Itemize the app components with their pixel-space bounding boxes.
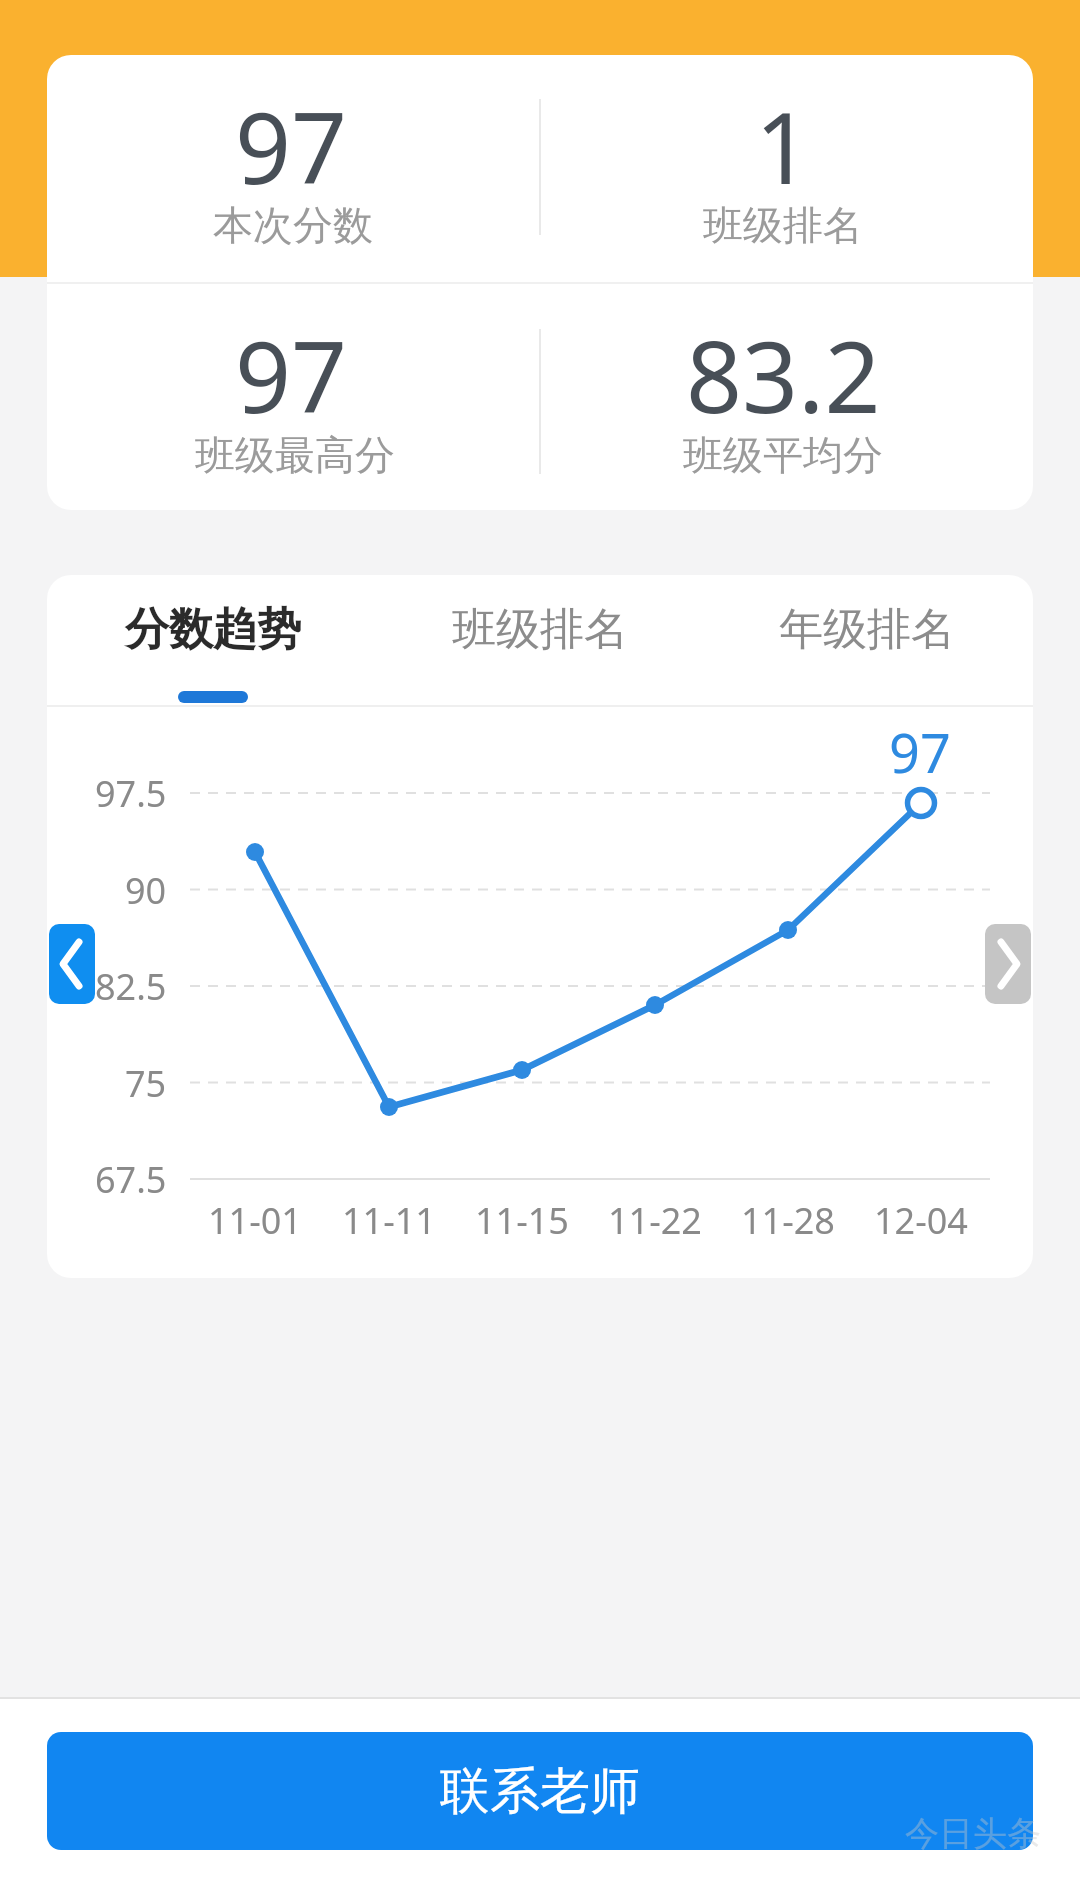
staticText: 11-28 [741, 1196, 835, 1245]
staticText: 82.5 [95, 962, 167, 1011]
button[interactable]: 年级排名 [717, 594, 1017, 664]
staticText: 11-15 [475, 1196, 569, 1245]
staticText: 班级排名 [703, 200, 863, 250]
staticText: 年级排名 [779, 602, 955, 657]
staticText: 1 [755, 79, 812, 199]
staticText: 12-04 [874, 1196, 968, 1245]
staticText: 97 [235, 79, 348, 199]
staticText: 班级平均分 [683, 430, 883, 480]
staticText: 分数趋势 [125, 602, 301, 657]
staticText: 班级最高分 [195, 430, 395, 480]
staticText: 97 [235, 308, 348, 428]
staticText: 11-11 [342, 1196, 436, 1245]
button[interactable] [49, 924, 95, 1004]
staticText: 11-22 [608, 1196, 702, 1245]
staticText: 83.2 [686, 308, 881, 428]
staticText: 本次分数 [213, 200, 373, 250]
staticText: 联系老师 [440, 1760, 640, 1823]
button[interactable] [985, 924, 1031, 1004]
staticText: 班级排名 [452, 602, 628, 657]
button[interactable]: 班级排名 [390, 594, 690, 664]
staticText: 67.5 [95, 1155, 167, 1204]
button[interactable]: 联系老师 [47, 1732, 1033, 1850]
staticText: 90 [125, 866, 167, 915]
staticText: 11-01 [208, 1196, 302, 1245]
staticText: 75 [125, 1059, 167, 1108]
staticText: 97.5 [95, 769, 167, 818]
button[interactable]: 分数趋势 [63, 594, 363, 664]
staticText: 97 [889, 715, 951, 789]
staticText: 今日头条 [905, 1812, 1041, 1855]
